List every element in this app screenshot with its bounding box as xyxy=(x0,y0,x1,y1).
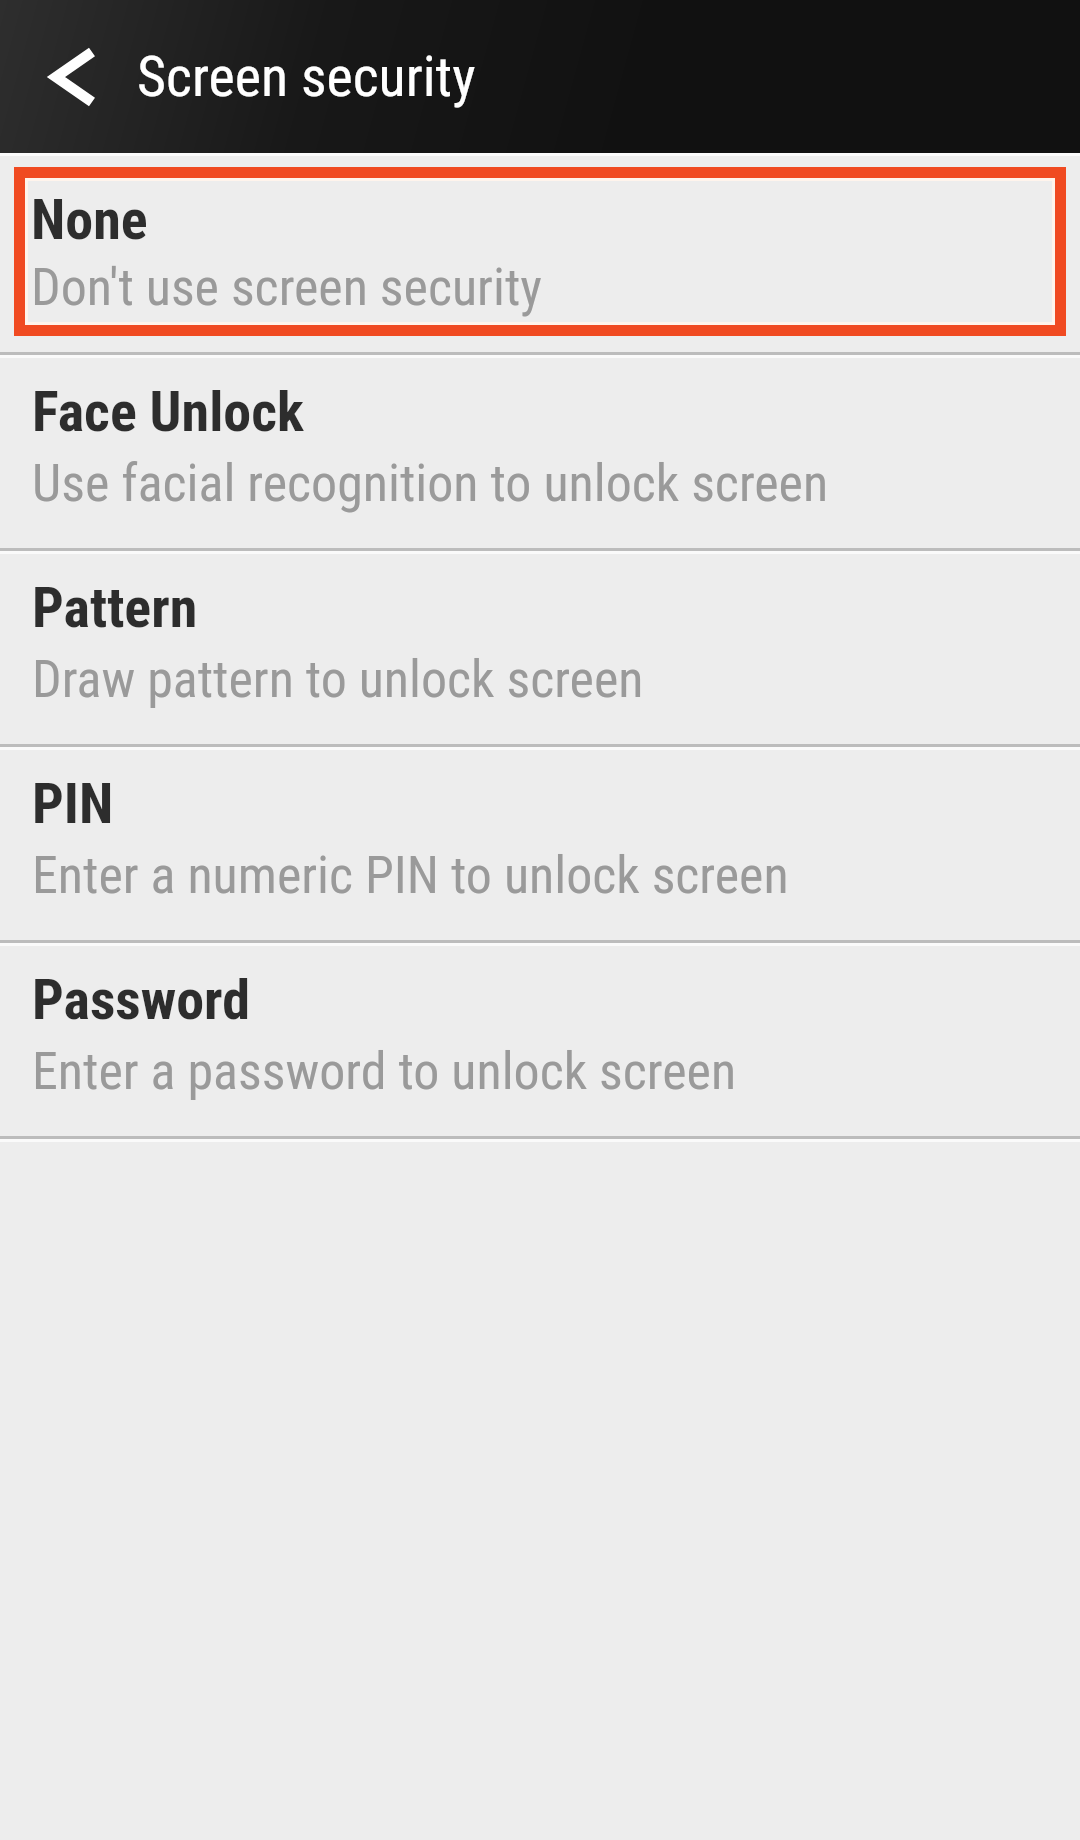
staticText: Face Unlock xyxy=(32,379,304,445)
staticText: Enter a password to unlock screen xyxy=(32,1041,737,1102)
staticText: Draw pattern to unlock screen xyxy=(32,649,644,710)
staticText: None xyxy=(31,187,148,253)
button[interactable]: Face Unlock xyxy=(0,358,1080,548)
staticText: PIN xyxy=(32,771,114,837)
staticText: Enter a numeric PIN to unlock screen xyxy=(32,845,789,906)
staticText: Password xyxy=(32,967,250,1033)
button[interactable]: Screen security xyxy=(0,0,1080,153)
button[interactable]: Password xyxy=(0,946,1080,1136)
button[interactable]: None xyxy=(25,178,1055,325)
button[interactable]: Pattern xyxy=(0,554,1080,744)
button[interactable]: PIN xyxy=(0,750,1080,940)
staticText: Don't use screen security xyxy=(31,257,542,318)
staticText: Pattern xyxy=(32,575,198,641)
staticText: Use facial recognition to unlock screen xyxy=(32,453,829,514)
staticText: Screen security xyxy=(137,44,476,110)
